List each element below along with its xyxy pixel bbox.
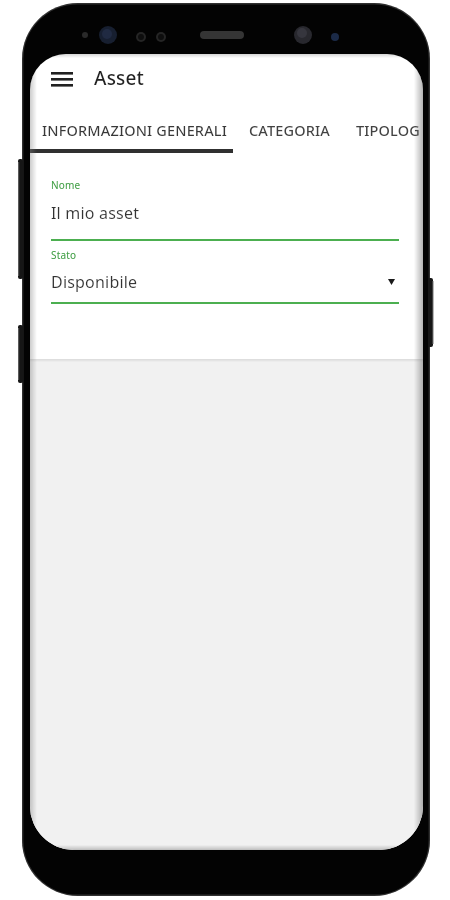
button[interactable]: [40, 61, 84, 97]
button[interactable]: Nome: [49, 176, 401, 240]
button[interactable]: Stato: [49, 246, 401, 306]
staticText: Il mio asset: [51, 202, 140, 224]
staticText: Disponibile: [51, 271, 138, 293]
button[interactable]: CATEGORIA: [249, 120, 330, 140]
staticText: Nome: [51, 178, 81, 192]
button[interactable]: TIPOLOG: [356, 120, 420, 140]
staticText: Asset: [94, 65, 145, 91]
button[interactable]: INFORMAZIONI GENERALI: [42, 120, 227, 140]
staticText: Stato: [51, 248, 77, 262]
